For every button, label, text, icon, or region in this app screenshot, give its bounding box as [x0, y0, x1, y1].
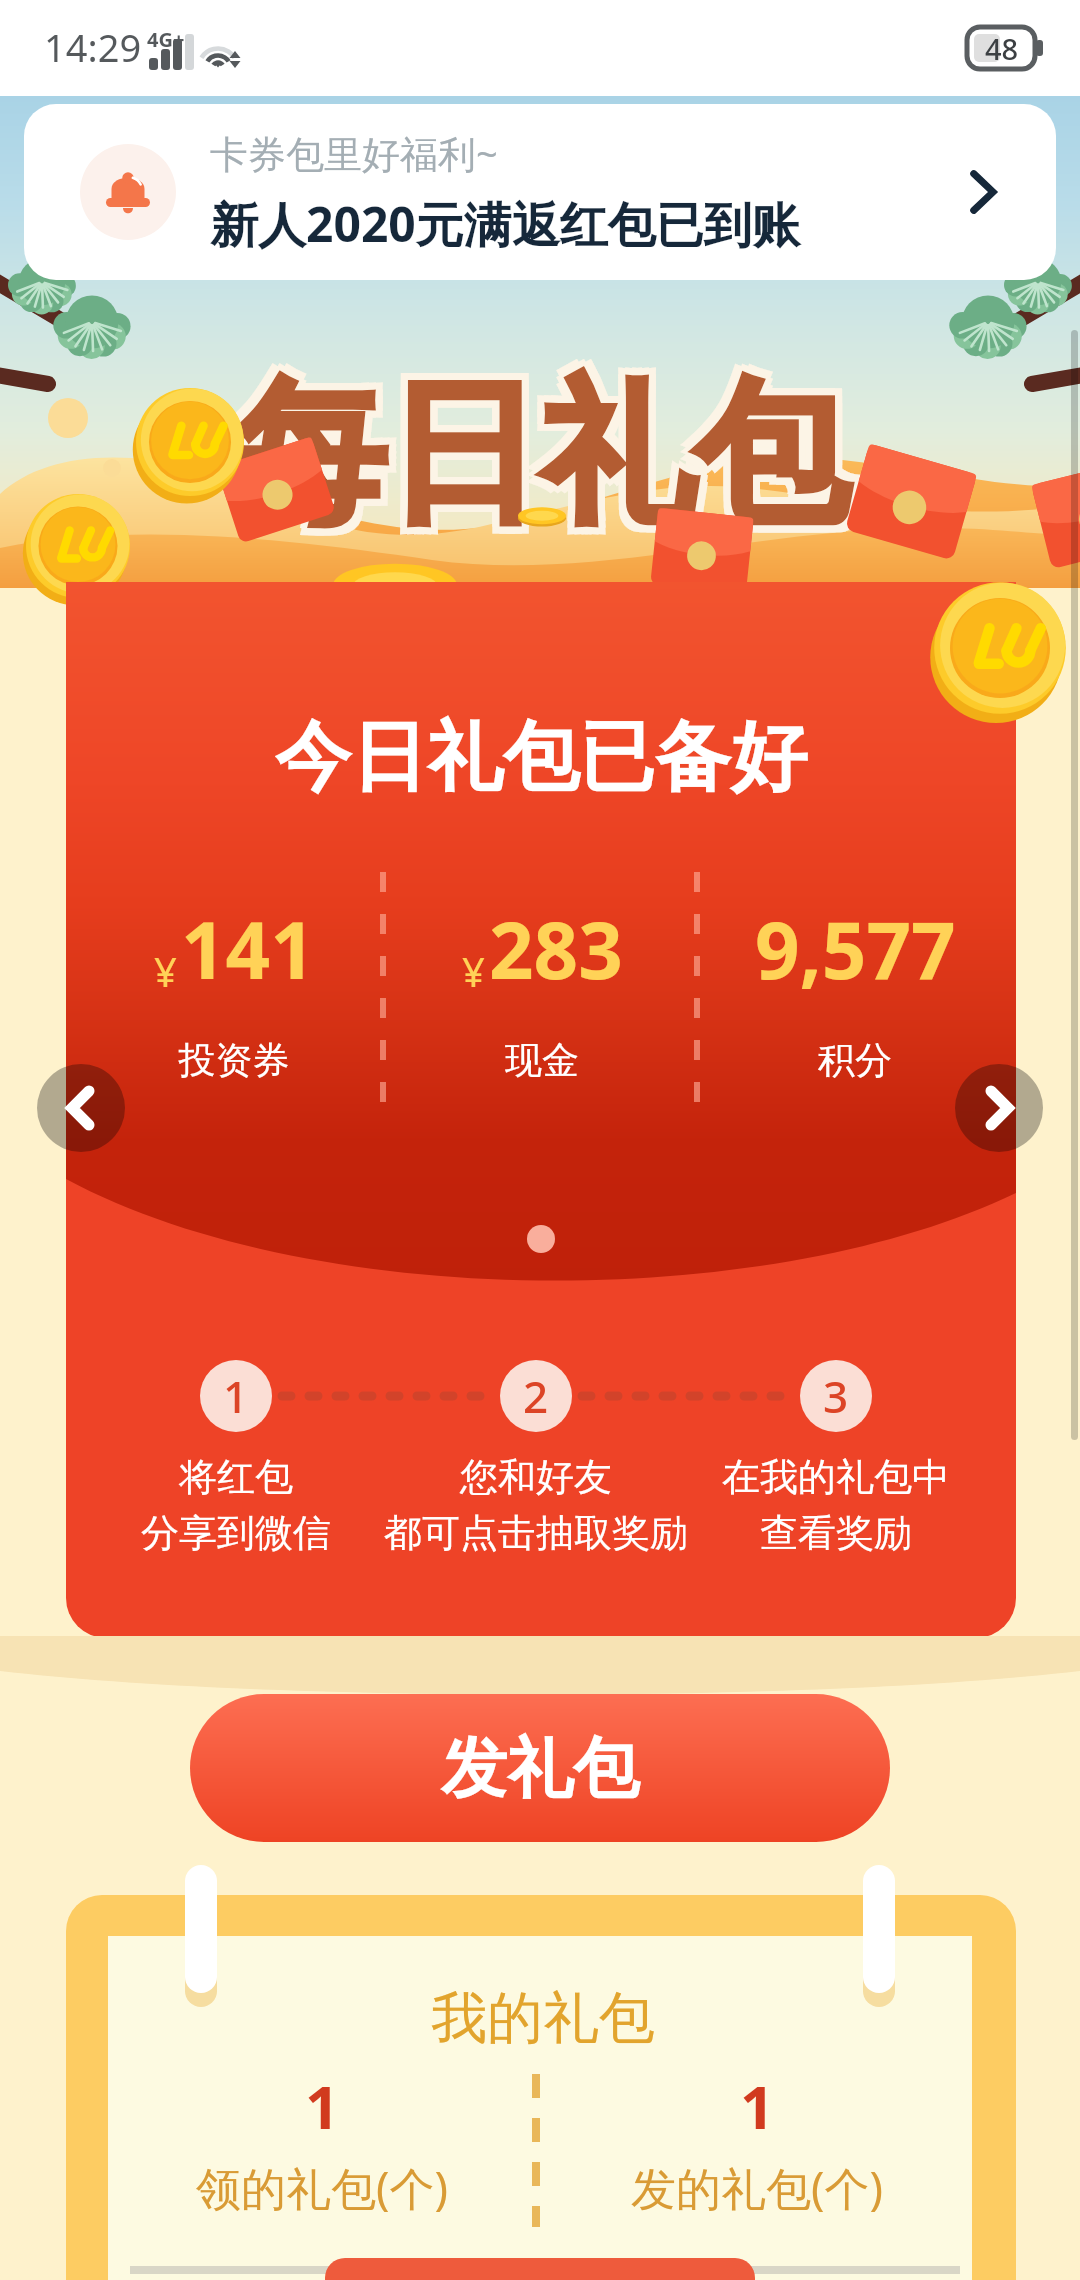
staticText: 14:29: [44, 21, 142, 73]
staticText: 积分: [655, 1037, 1016, 1084]
button[interactable]: 3: [800, 1360, 872, 1432]
staticText: 您和好友 都可点击抽取奖励: [336, 1453, 736, 1557]
staticText: 141: [181, 896, 315, 1002]
staticText: 1: [223, 1366, 249, 1426]
staticText: 每日礼包: [239, 351, 855, 545]
button[interactable]: 卡券包里好福利~: [24, 104, 1056, 280]
staticText: 1: [740, 2065, 775, 2147]
staticText: ¥: [462, 944, 485, 998]
staticText: 每日礼包: [239, 358, 855, 552]
staticText: 3: [823, 1366, 849, 1426]
staticText: 9,577: [755, 896, 956, 1002]
staticText: 每日礼包: [239, 365, 855, 559]
staticText: 4G+: [147, 26, 185, 53]
staticText: 发礼包: [441, 1727, 639, 1810]
staticText: 48: [985, 29, 1019, 68]
staticText: 发的礼包(个): [631, 2157, 884, 2218]
staticText: 每日礼包: [225, 358, 841, 552]
staticText: ¥: [154, 944, 177, 998]
button[interactable]: [325, 2258, 755, 2280]
staticText: 领的礼包(个): [196, 2157, 449, 2218]
staticText: 将红包 分享到微信: [66, 1453, 436, 1557]
button[interactable]: 上一个: [37, 1064, 125, 1152]
staticText: 1: [305, 2065, 340, 2147]
button[interactable]: 发礼包: [190, 1694, 890, 1842]
button[interactable]: 2: [500, 1360, 572, 1432]
staticText: 每日礼包: [232, 365, 848, 559]
button[interactable]: 下一个: [955, 1064, 1043, 1152]
button[interactable]: 查看详情: [948, 158, 1016, 226]
staticText: 卡券包里好福利~: [210, 127, 498, 179]
staticText: 在我的礼包中 查看奖励: [636, 1453, 1016, 1557]
button[interactable]: 1: [122, 2065, 522, 2235]
staticText: 现金: [342, 1037, 742, 1084]
staticText: 每日礼包: [232, 351, 848, 545]
button[interactable]: 1: [200, 1360, 272, 1432]
staticText: 每日礼包: [225, 365, 841, 559]
staticText: 新人2020元满返红包已到账: [210, 191, 800, 257]
staticText: 2: [523, 1366, 549, 1426]
staticText: 今日礼包已备好: [275, 710, 807, 806]
staticText: 每日礼包: [225, 351, 841, 545]
button[interactable]: 1: [557, 2065, 957, 2235]
staticText: 我的礼包: [431, 1983, 655, 2054]
staticText: 每日礼包: [232, 358, 848, 552]
staticText: 投资券: [66, 1037, 434, 1084]
staticText: 283: [489, 896, 623, 1002]
